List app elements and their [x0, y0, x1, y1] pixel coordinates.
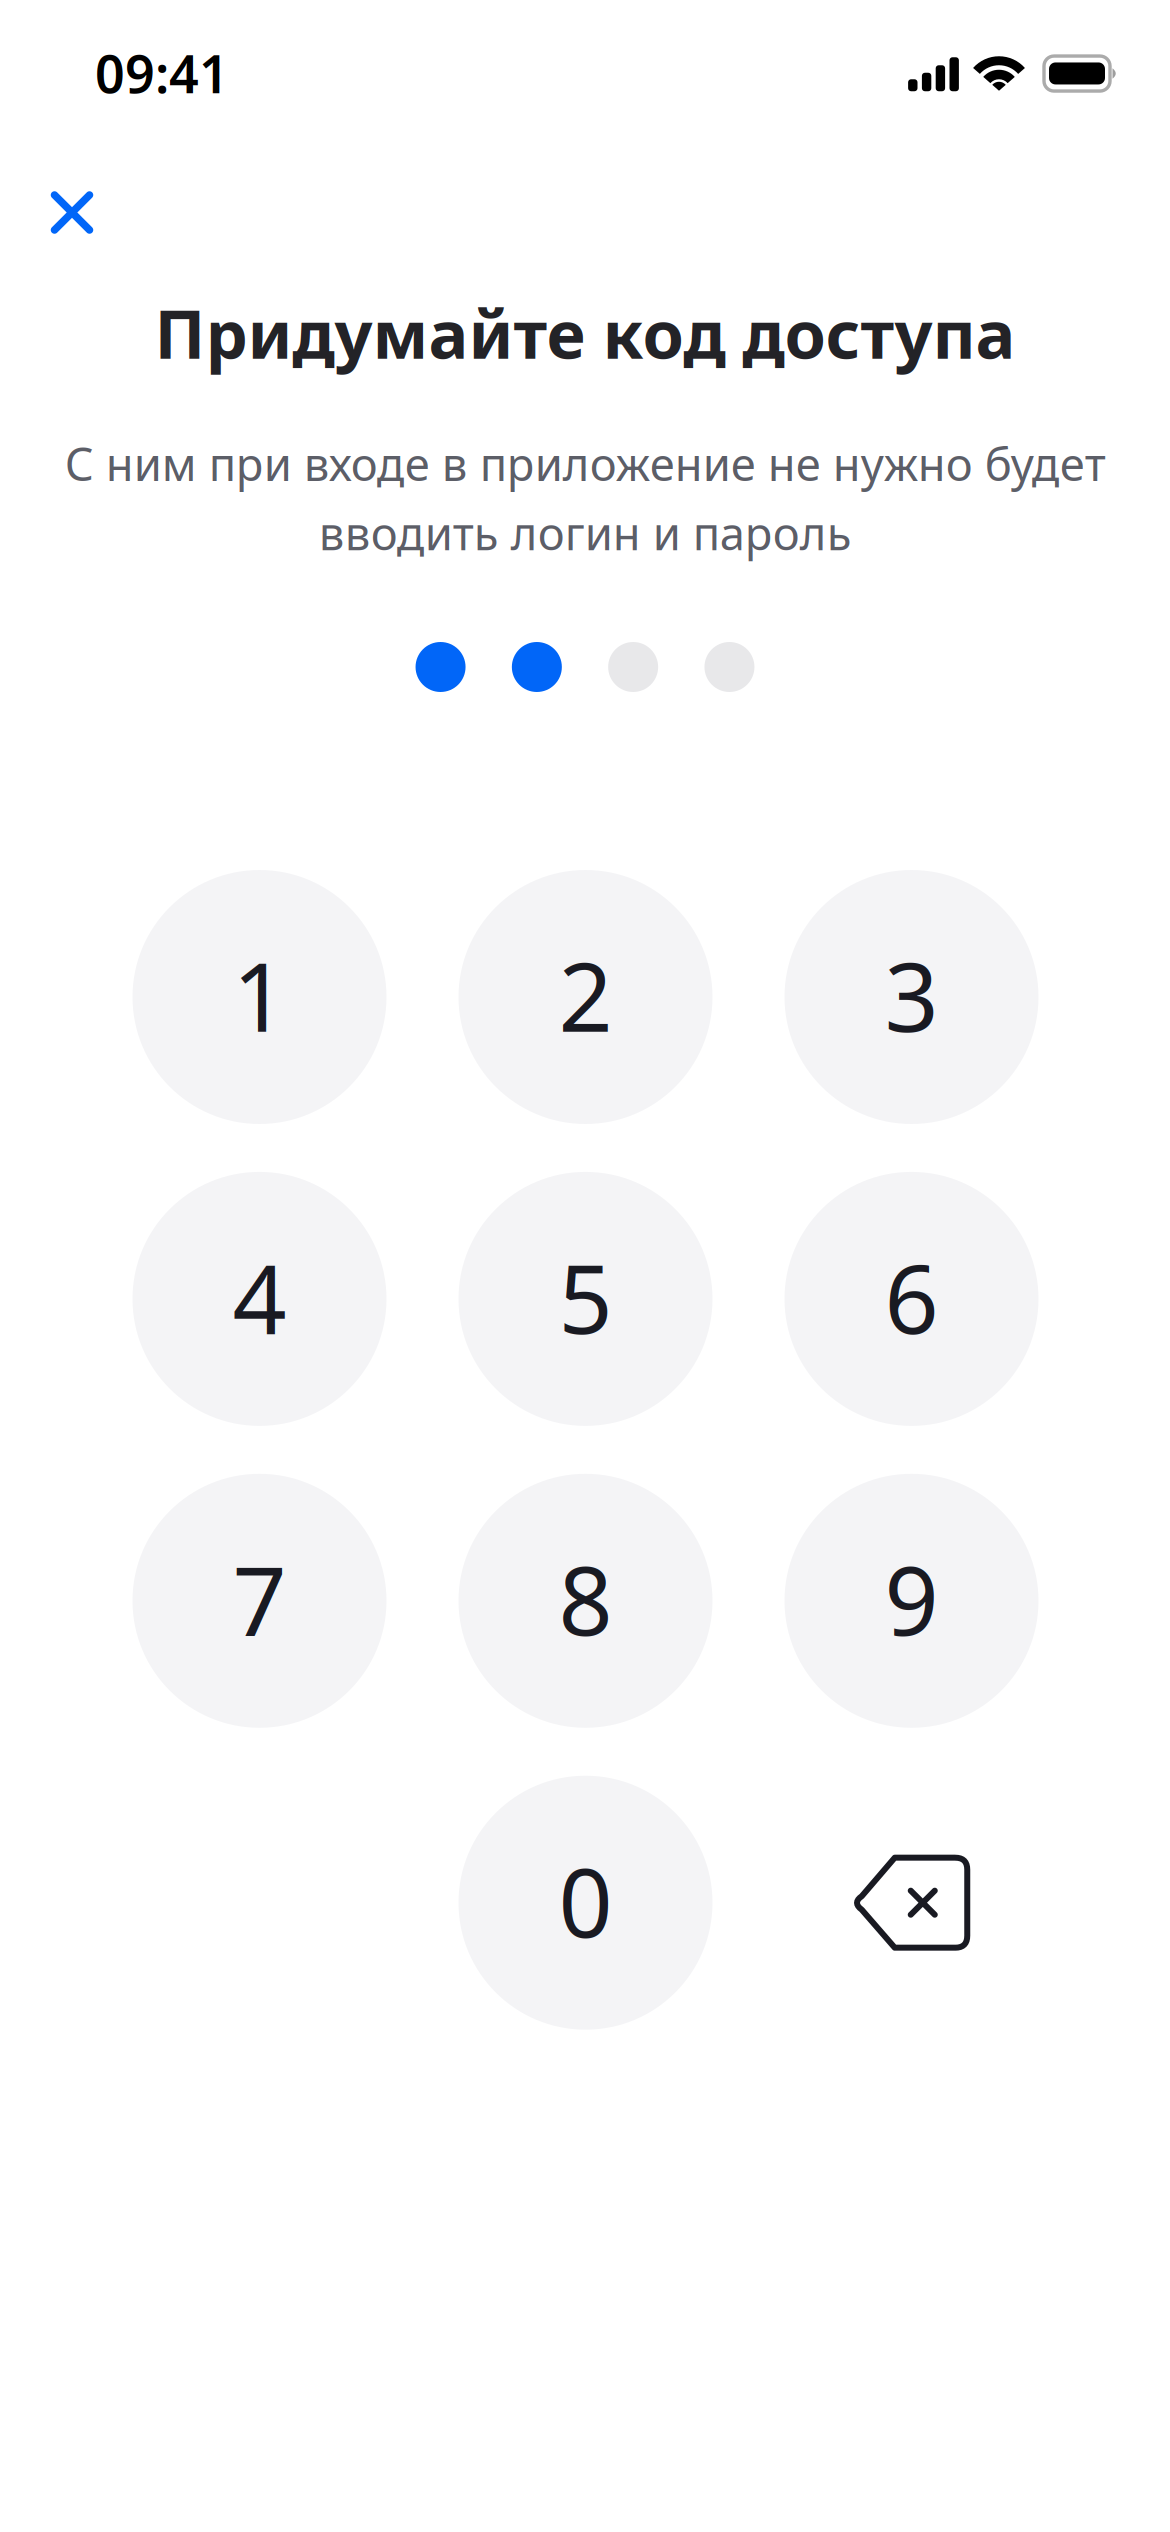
staticText: 0 [558, 1838, 612, 1963]
button[interactable]: Close [18, 158, 126, 266]
button[interactable]: Delete [784, 1776, 1038, 2030]
button[interactable]: 7 [132, 1474, 386, 1728]
staticText: 6 [884, 1234, 938, 1360]
button[interactable]: 1 [132, 870, 386, 1124]
button[interactable]: 8 [458, 1474, 712, 1728]
button[interactable]: 3 [784, 870, 1038, 1124]
staticText: 1 [232, 932, 286, 1058]
staticText: Придумайте код доступа [154, 289, 1015, 377]
staticText: 2 [558, 932, 612, 1058]
button[interactable]: 4 [132, 1172, 386, 1426]
staticText: 5 [558, 1234, 612, 1360]
button[interactable]: 5 [458, 1172, 712, 1426]
staticText: 09:41 [95, 38, 229, 108]
staticText: С ним при входе в приложение не нужно бу… [64, 433, 1105, 563]
button[interactable]: 9 [784, 1474, 1038, 1728]
staticText: 9 [884, 1536, 938, 1662]
button[interactable]: 2 [458, 870, 712, 1124]
staticText: 4 [232, 1234, 286, 1360]
staticText: 7 [232, 1536, 286, 1662]
button[interactable]: 0 [458, 1776, 712, 2030]
staticText: 8 [558, 1536, 612, 1662]
button[interactable]: 6 [784, 1172, 1038, 1426]
staticText: 3 [884, 932, 938, 1058]
